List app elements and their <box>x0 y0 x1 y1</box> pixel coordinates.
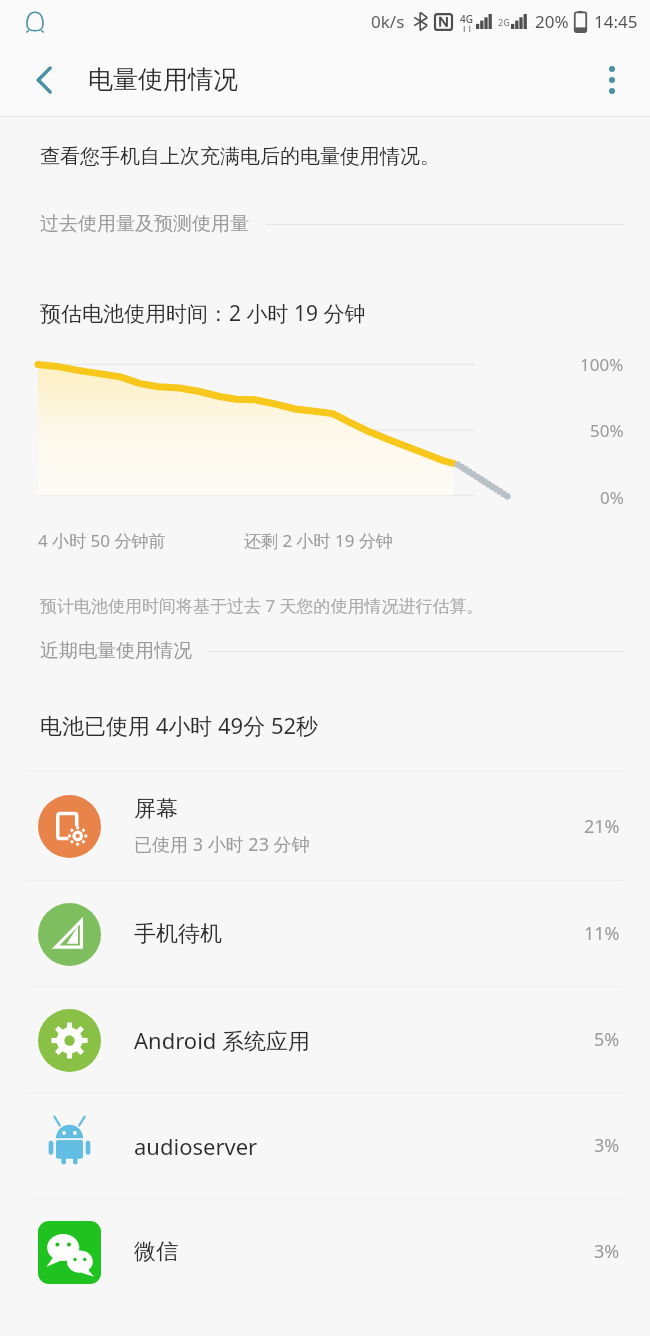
staticText: 21% <box>584 814 620 839</box>
staticText: 3% <box>594 1133 620 1158</box>
staticText: 20% <box>535 10 569 33</box>
staticText: 过去使用量及预测使用量 <box>40 212 249 236</box>
button[interactable]: Android 系统应用 <box>0 987 650 1092</box>
staticText: 0k/s <box>371 10 405 33</box>
button[interactable]: audioserver <box>0 1093 650 1198</box>
staticText: 14:45 <box>594 10 638 33</box>
staticText: 查看您手机自上次充满电后的电量使用情况。 <box>40 144 440 169</box>
button[interactable]: Back <box>18 54 70 106</box>
staticText: Android 系统应用 <box>134 1025 311 1055</box>
staticText: 手机待机 <box>134 920 222 948</box>
staticText: 0% <box>600 486 624 509</box>
staticText: 11% <box>584 921 620 946</box>
staticText: 电量使用情况 <box>88 64 238 95</box>
staticText: 已使用 3 小时 23 分钟 <box>134 832 310 857</box>
staticText: 微信 <box>134 1238 178 1266</box>
staticText: 4 小时 50 分钟前 <box>38 529 166 552</box>
button[interactable]: 微信 <box>0 1199 650 1304</box>
staticText: 2G <box>498 16 510 28</box>
staticText: 100% <box>580 353 624 376</box>
staticText: 近期电量使用情况 <box>40 639 192 663</box>
staticText: 屏幕 <box>134 795 178 823</box>
button[interactable]: More options <box>586 54 638 106</box>
staticText: 电池已使用 4小时 49分 52秒 <box>40 710 319 740</box>
button[interactable]: 手机待机 <box>0 881 650 986</box>
staticText: 5% <box>594 1027 620 1052</box>
staticText: 3% <box>594 1239 620 1264</box>
staticText: 4G <box>460 12 473 26</box>
staticText: 预计电池使用时间将基于过去 7 天您的使用情况进行估算。 <box>40 594 484 617</box>
staticText: 50% <box>590 419 624 442</box>
staticText: 预估电池使用时间：2 小时 19 分钟 <box>40 299 366 328</box>
button[interactable]: 屏幕 <box>0 772 650 880</box>
staticText: audioserver <box>134 1131 258 1161</box>
staticText: 还剩 2 小时 19 分钟 <box>244 529 393 552</box>
